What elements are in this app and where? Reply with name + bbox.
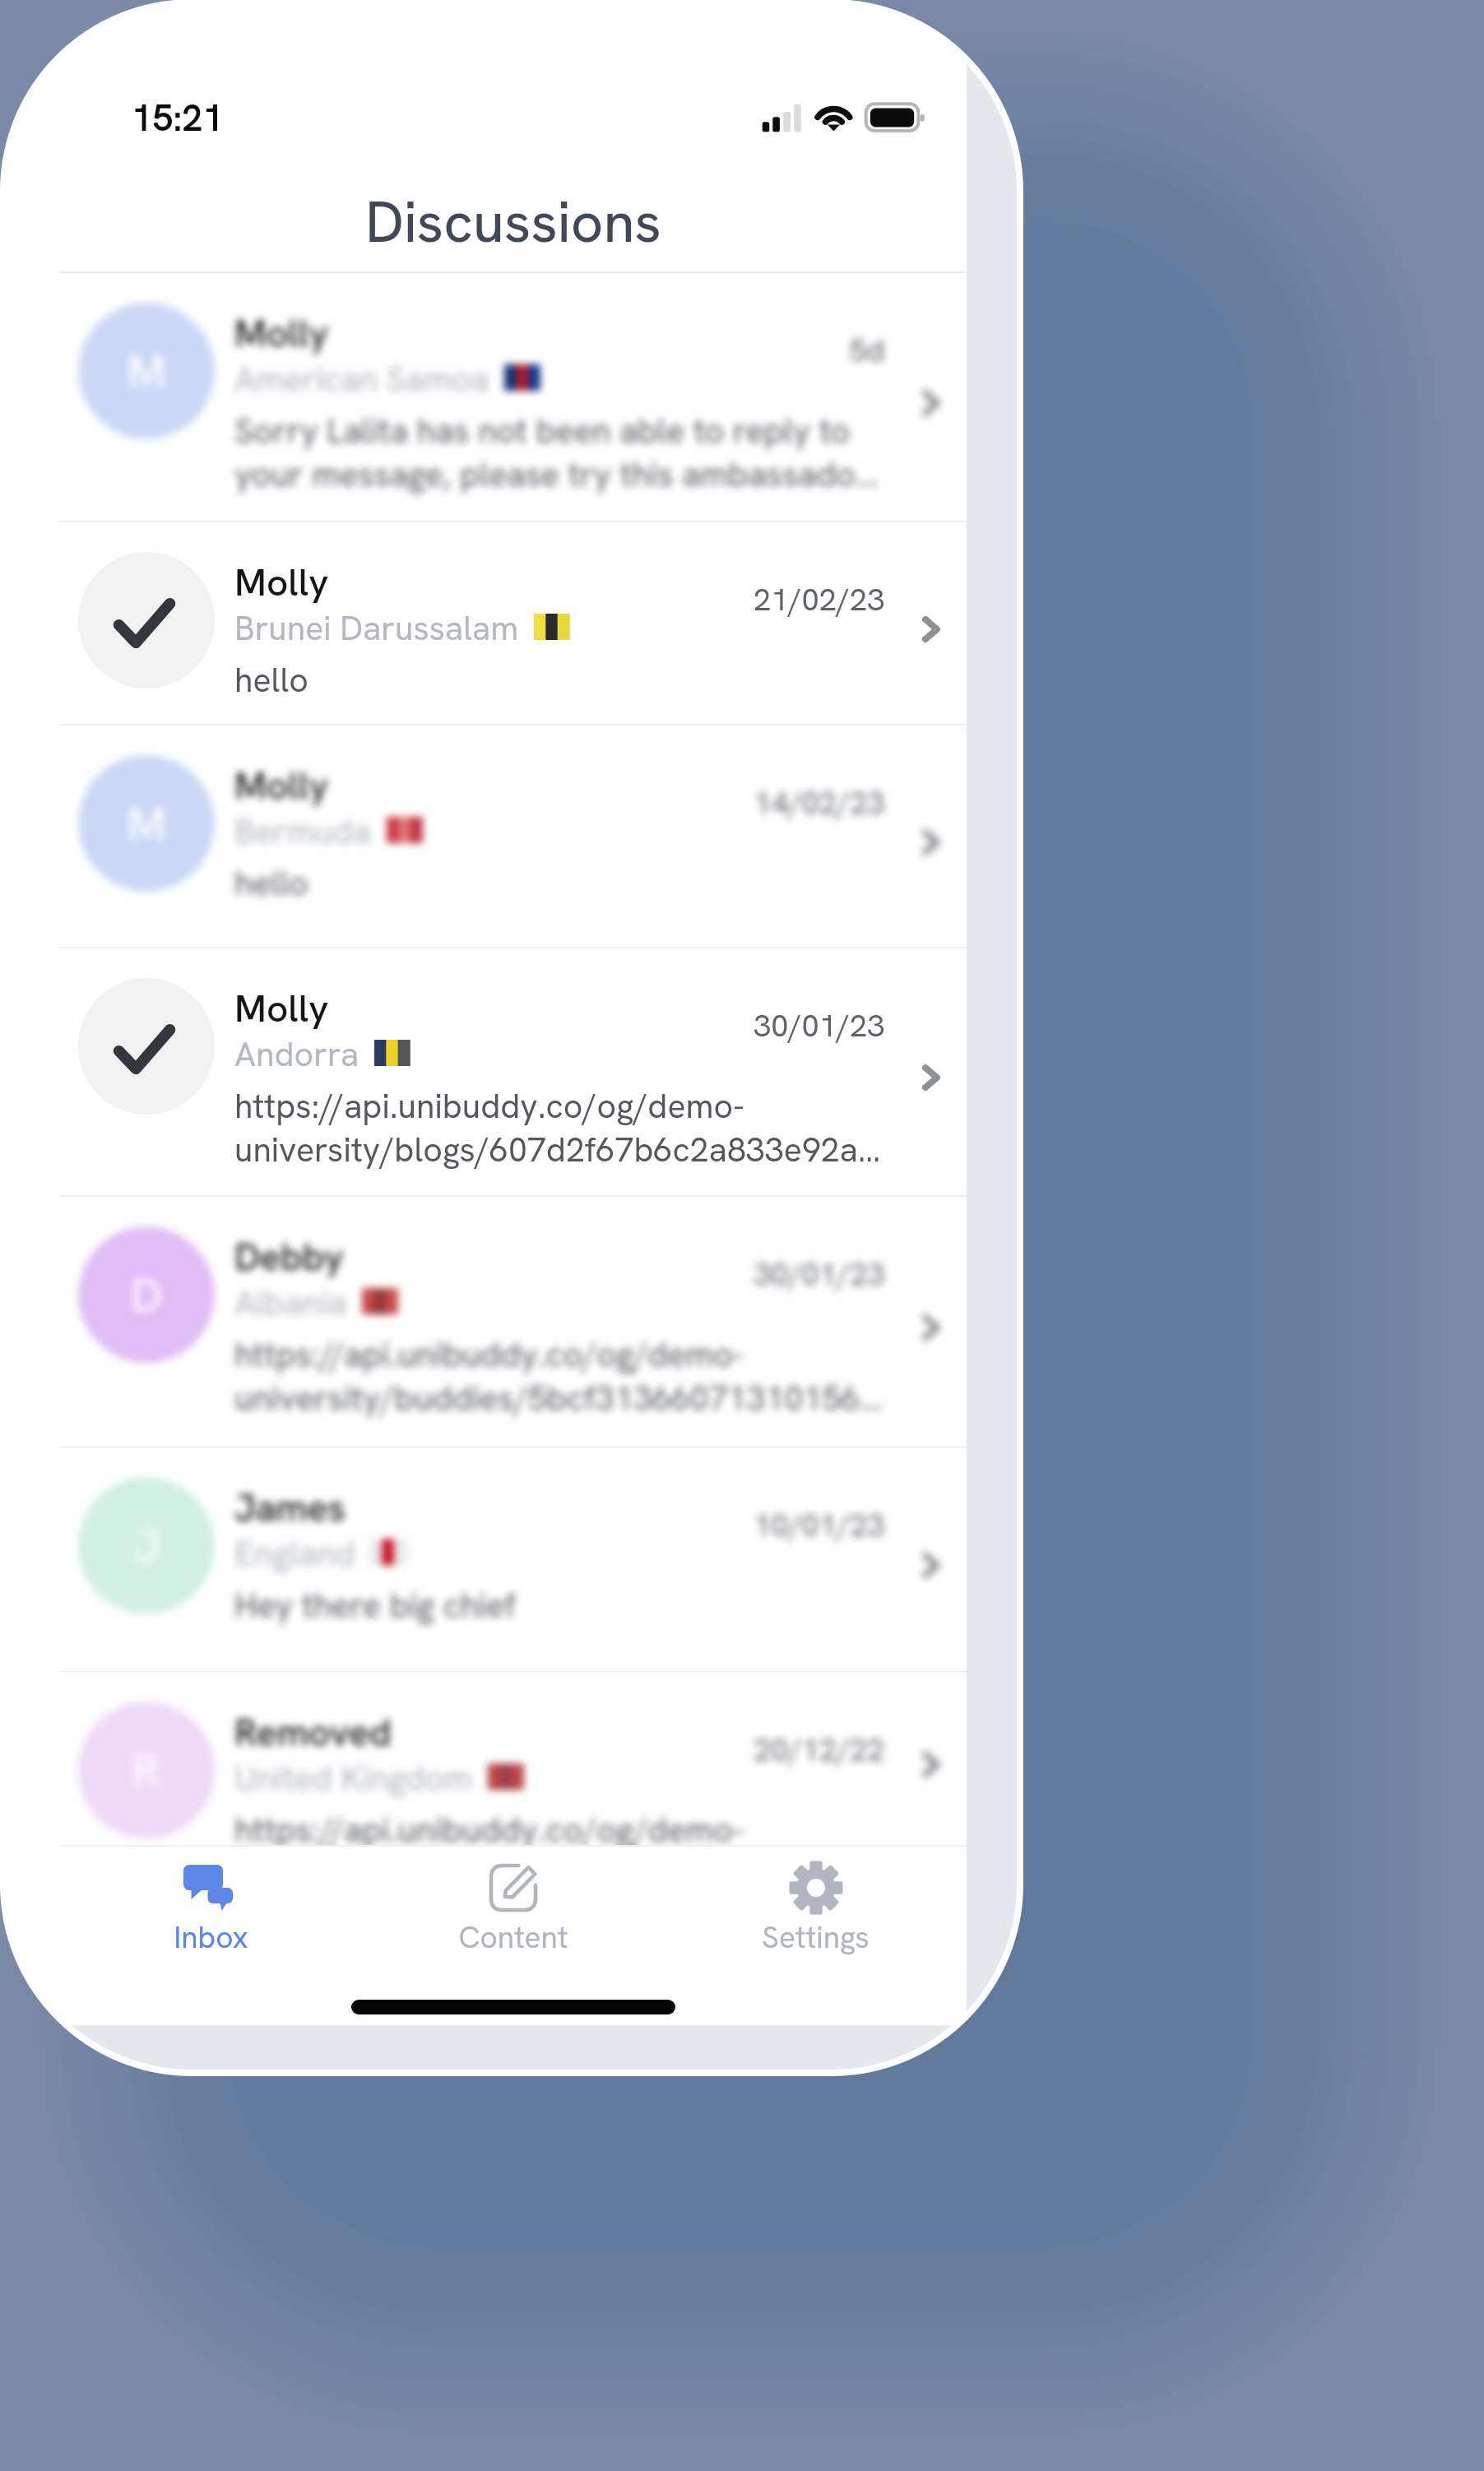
button[interactable]: M: [59, 273, 967, 522]
staticText: 21/02/23: [754, 579, 885, 620]
other: Inbox: [182, 1858, 241, 1917]
staticText: Debby: [234, 1232, 345, 1282]
staticText: hello: [234, 861, 308, 905]
other: Settings: [786, 1858, 846, 1917]
staticText: American Samoa: [234, 357, 489, 401]
button[interactable]: R: [59, 1672, 967, 1847]
staticText: Removed: [234, 1708, 392, 1757]
staticText: university/blogs/607d2f67b6c2a833e92a…: [234, 1128, 881, 1171]
staticText: M: [128, 794, 166, 854]
staticText: Albania: [234, 1281, 347, 1324]
staticText: D: [131, 1265, 163, 1325]
staticText: 5d: [849, 330, 885, 371]
staticText: Bermuda: [234, 809, 372, 853]
other: Content: [484, 1858, 543, 1917]
staticText: 10/01/23: [754, 1504, 885, 1546]
staticText: Molly: [234, 558, 329, 607]
staticText: United Kingdom: [234, 1756, 473, 1800]
button[interactable]: Content: [362, 1847, 665, 2025]
staticText: https://api.unibuddy.co/og/demo-: [234, 1333, 744, 1376]
staticText: https://api.unibuddy.co/og/demo-: [234, 1808, 744, 1847]
staticText: Molly: [234, 308, 329, 358]
staticText: 30/01/23: [754, 1254, 885, 1295]
staticText: Andorra: [234, 1032, 359, 1076]
button[interactable]: Inbox: [59, 1847, 362, 2025]
staticText: https://api.unibuddy.co/og/demo-: [234, 1084, 744, 1128]
staticText: 14/02/23: [754, 782, 885, 823]
staticText: your message, please try this ambassado…: [234, 452, 879, 496]
button[interactable]: Molly: [59, 522, 967, 726]
staticText: Molly: [234, 761, 329, 810]
staticText: James: [234, 1483, 346, 1532]
staticText: M: [128, 341, 166, 401]
staticText: R: [132, 1741, 160, 1801]
staticText: Brunei Darussalam: [234, 606, 519, 650]
staticText: Inbox: [174, 1917, 248, 1957]
staticText: university/buddies/5bcf31366071310156…: [234, 1376, 883, 1420]
staticText: Hey there big chief: [234, 1583, 517, 1627]
staticText: Sorry Lalita has not been able to reply …: [234, 409, 851, 452]
staticText: Discussions: [365, 185, 661, 259]
staticText: J: [134, 1516, 160, 1576]
staticText: Content: [458, 1917, 568, 1957]
button[interactable]: Settings: [664, 1847, 967, 2025]
staticText: England: [234, 1532, 355, 1575]
button[interactable]: M: [59, 726, 967, 948]
staticText: 15:21: [132, 94, 224, 142]
button[interactable]: D: [59, 1197, 967, 1448]
staticText: Molly: [234, 984, 329, 1033]
staticText: hello: [234, 658, 308, 702]
staticText: Settings: [762, 1917, 870, 1957]
staticText: 20/12/22: [754, 1729, 885, 1770]
staticText: 30/01/23: [754, 1005, 885, 1046]
button[interactable]: Molly: [59, 948, 967, 1197]
button[interactable]: J: [59, 1448, 967, 1672]
